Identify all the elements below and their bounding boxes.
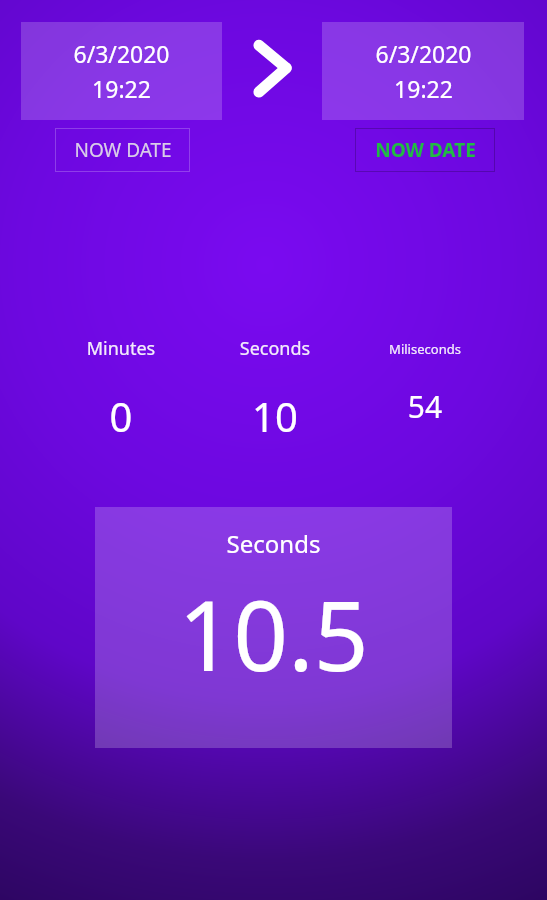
staticText: Seconds — [95, 527, 452, 560]
staticText: NOW DATE — [74, 137, 172, 163]
button[interactable]: Forward — [245, 33, 301, 103]
staticText: Seconds — [215, 336, 335, 361]
staticText: 54 — [370, 386, 480, 427]
staticText: 6/3/2020 — [73, 38, 170, 69]
staticText: Minutes — [61, 336, 181, 361]
staticText: 19:22 — [92, 73, 151, 104]
button[interactable]: Minutes — [61, 336, 181, 443]
button[interactable]: 6/3/2020 — [322, 22, 524, 120]
staticText: NOW DATE — [375, 137, 476, 163]
button[interactable]: Miliseconds — [370, 340, 480, 427]
button[interactable]: NOW DATE — [55, 128, 190, 172]
button[interactable]: NOW DATE — [355, 128, 495, 172]
staticText: 10.5 — [95, 568, 452, 699]
staticText: 0 — [61, 389, 181, 443]
staticText: Miliseconds — [370, 340, 480, 358]
staticText: 6/3/2020 — [375, 38, 472, 69]
staticText: 19:22 — [394, 73, 453, 104]
button[interactable]: Seconds — [215, 336, 335, 443]
button[interactable]: 6/3/2020 — [21, 22, 222, 120]
staticText: 10 — [215, 389, 335, 443]
button[interactable]: Seconds — [95, 507, 452, 748]
